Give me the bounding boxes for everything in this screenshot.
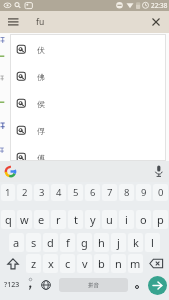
staticText: 俘 [37,126,45,136]
staticText: g [81,235,88,250]
button[interactable]: j [111,233,126,252]
button[interactable] [147,14,165,30]
staticText: 22:38 [151,1,168,10]
button[interactable] [148,276,167,295]
staticText: a [13,235,20,250]
button[interactable]: ?123 [0,274,24,296]
button[interactable]: t [68,210,83,229]
button[interactable]: e [34,210,49,229]
button[interactable]: 傅 [10,144,165,171]
button[interactable]: x [43,254,58,273]
button[interactable] [4,14,24,30]
button[interactable]: p [153,210,168,229]
staticText: l [151,235,154,250]
button[interactable]: 0 [153,184,168,201]
button[interactable]: 伏 [10,36,165,63]
staticText: r [56,212,61,227]
button[interactable]: b [94,254,109,273]
staticText: 侯 [37,99,45,109]
staticText: t [74,212,78,227]
button[interactable]: a [9,233,24,252]
staticText: v [82,256,88,271]
button[interactable] [130,274,144,296]
button[interactable]: 拼音 [59,278,128,292]
button[interactable]: q [1,210,15,229]
button[interactable]: y [85,210,100,229]
staticText: 伏 [37,45,45,55]
button[interactable]: d [43,233,58,252]
button[interactable]: 4 [51,184,66,201]
button[interactable]: l [145,233,160,252]
staticText: k [133,235,139,250]
staticText: 2 [22,186,28,199]
staticText: b [98,256,105,271]
button[interactable] [24,274,37,296]
button[interactable]: f [60,233,75,252]
staticText: 6 [90,186,96,199]
button[interactable] [150,163,167,180]
button[interactable]: r [51,210,66,229]
staticText: f [66,235,70,250]
staticText: 5 [73,186,79,199]
staticText: x [48,256,54,271]
staticText: 佛 [37,72,45,82]
button[interactable]: 侯 [10,90,165,117]
button[interactable]: 佛 [10,63,165,90]
button[interactable] [144,252,169,275]
button[interactable]: m [128,254,143,273]
staticText: 傅 [37,153,45,163]
button[interactable]: 2 [17,184,32,201]
button[interactable] [38,274,54,296]
staticText: p [157,212,164,227]
button[interactable]: k [128,233,143,252]
button[interactable]: w [17,210,32,229]
staticText: e [38,212,45,227]
staticText: o [140,212,147,227]
button[interactable]: 9 [136,184,151,201]
staticText: c [65,256,71,271]
staticText: s [31,235,37,250]
staticText: 3 [39,186,45,199]
staticText: y [90,212,96,227]
staticText: w [20,212,29,227]
staticText: 9 [141,186,147,199]
button[interactable]: 1 [1,184,15,201]
button[interactable]: i [119,210,134,229]
button[interactable]: c [60,254,75,273]
button[interactable]: 5 [68,184,83,201]
button[interactable]: 俘 [10,117,165,144]
staticText: d [47,235,54,250]
staticText: u [106,212,113,227]
staticText: q [5,212,12,227]
staticText: h [98,235,105,250]
button[interactable]: 8 [119,184,134,201]
button[interactable]: s [26,233,41,252]
staticText: 7 [107,186,113,199]
staticText: i [125,212,128,227]
button[interactable]: h [94,233,109,252]
button[interactable]: 7 [102,184,117,201]
button[interactable]: o [136,210,151,229]
button[interactable] [0,252,25,275]
staticText: n [115,256,122,271]
staticText: j [117,235,120,250]
staticText: z [31,256,37,271]
button[interactable]: 3 [34,184,49,201]
staticText: 8 [124,186,130,199]
button[interactable]: 6 [85,184,100,201]
button[interactable]: n [111,254,126,273]
staticText: ?123 [4,280,20,290]
staticText: m [130,256,141,271]
staticText: 0 [158,186,164,199]
button[interactable]: z [26,254,41,273]
button[interactable]: g [77,233,92,252]
staticText: 1 [5,186,11,199]
button[interactable]: u [102,210,117,229]
button[interactable]: v [77,254,92,273]
staticText: 拼音 [88,282,99,289]
staticText: 4 [56,186,62,199]
button[interactable] [2,163,19,180]
staticText: fu [36,16,45,28]
